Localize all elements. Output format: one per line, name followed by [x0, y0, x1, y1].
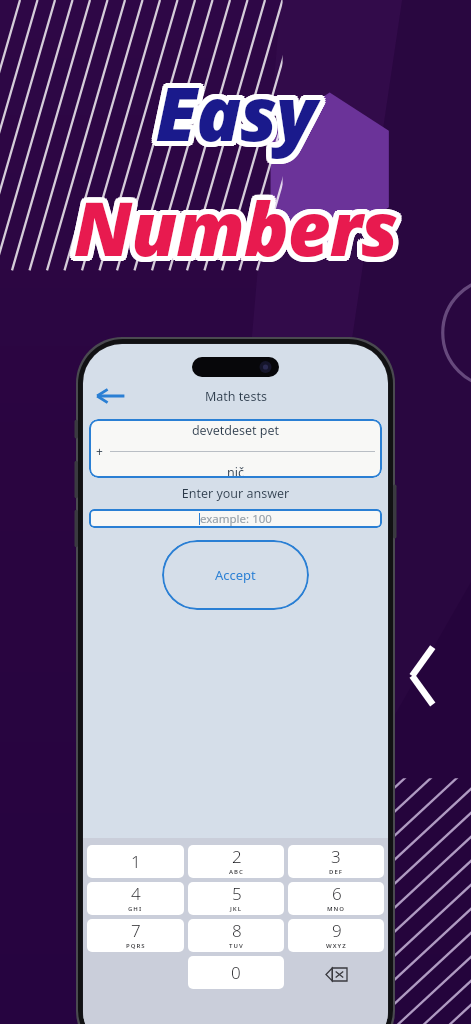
staticText: Numbers — [3, 177, 471, 278]
staticText: 7 — [131, 919, 141, 942]
staticText: Numbers — [0, 177, 468, 278]
staticText: Easy — [5, 60, 471, 161]
button[interactable]: 8 — [188, 919, 284, 952]
staticText: Numbers — [0, 174, 471, 275]
staticText: Numbers — [0, 172, 471, 273]
staticText: Enter your answer — [83, 485, 388, 502]
staticText: Easy — [0, 64, 470, 165]
staticText: Easy — [4, 66, 471, 167]
staticText: Easy — [0, 57, 471, 158]
staticText: Easy — [0, 57, 469, 158]
button[interactable]: 2 — [188, 845, 284, 878]
staticText: Easy — [2, 67, 471, 168]
button[interactable]: 1 — [87, 845, 184, 878]
staticText: Numbers — [0, 177, 466, 278]
staticText: Math tests — [205, 388, 267, 405]
staticText: TUV — [229, 942, 244, 950]
staticText: Easy — [2, 61, 471, 162]
staticText: Numbers — [0, 173, 467, 274]
staticText: 4 — [131, 882, 141, 905]
staticText: Easy — [0, 64, 466, 165]
staticText: Easy — [4, 58, 471, 159]
staticText: 6 — [332, 882, 342, 905]
button[interactable]: 6 — [288, 882, 384, 915]
staticText: Numbers — [0, 179, 466, 280]
button[interactable]: 5 — [188, 882, 284, 915]
staticText: Easy — [0, 65, 471, 166]
staticText: Easy — [0, 58, 467, 159]
staticText: Easy — [1, 60, 471, 161]
button[interactable]: example: 100 — [89, 509, 382, 528]
staticText: Easy — [0, 62, 466, 163]
staticText: Numbers — [1, 175, 471, 276]
staticText: Easy — [0, 59, 471, 160]
button[interactable]: Accept — [162, 540, 309, 610]
staticText: MNO — [327, 905, 346, 913]
staticText: Easy — [3, 62, 471, 163]
staticText: Numbers — [5, 175, 471, 276]
staticText: Numbers — [0, 177, 471, 278]
staticText: Numbers — [0, 182, 469, 283]
staticText: Easy — [0, 61, 469, 162]
staticText: WXYZ — [326, 942, 347, 950]
staticText: Numbers — [5, 179, 471, 280]
staticText: Easy — [1, 64, 471, 165]
staticText: Easy — [0, 67, 471, 168]
button[interactable]: 7 — [87, 919, 184, 952]
staticText: GHI — [128, 905, 143, 913]
staticText: Numbers — [0, 175, 466, 276]
staticText: Numbers — [4, 181, 471, 282]
staticText: Numbers — [0, 176, 469, 277]
staticText: Easy — [0, 63, 469, 164]
button[interactable]: devetdeset pet — [89, 419, 382, 478]
staticText: Numbers — [0, 180, 471, 281]
staticText: Numbers — [2, 182, 471, 283]
staticText: Accept — [215, 566, 256, 584]
button[interactable]: 9 — [288, 919, 384, 952]
staticText: 2 — [232, 845, 242, 868]
staticText: 1 — [131, 850, 141, 873]
staticText: Numbers — [0, 179, 470, 280]
staticText: + — [96, 443, 103, 459]
button[interactable]: 3 — [288, 845, 384, 878]
staticText: example: 100 — [200, 511, 272, 527]
staticText: devetdeset pet — [89, 422, 382, 439]
staticText: Numbers — [2, 176, 471, 277]
staticText: Numbers — [2, 178, 471, 279]
staticText: Numbers — [0, 178, 469, 279]
staticText: Easy — [5, 64, 471, 165]
staticText: DEF — [329, 868, 343, 876]
staticText: JKL — [230, 905, 243, 913]
staticText: 9 — [332, 919, 342, 942]
staticText: Numbers — [0, 182, 471, 283]
staticText: Numbers — [1, 179, 471, 280]
staticText: Easy — [2, 57, 471, 158]
staticText: Easy — [0, 66, 467, 167]
button[interactable]: Backspace — [310, 956, 362, 992]
staticText: PQRS — [126, 942, 146, 950]
staticText: Easy — [0, 67, 469, 168]
button[interactable]: 4 — [87, 882, 184, 915]
button[interactable]: Back — [89, 379, 131, 413]
staticText: 0 — [231, 961, 241, 984]
staticText: ABC — [229, 868, 244, 876]
staticText: Numbers — [0, 181, 467, 282]
staticText: Easy — [2, 63, 471, 164]
staticText: Easy — [5, 62, 471, 163]
staticText: Numbers — [5, 177, 471, 278]
staticText: 8 — [232, 919, 242, 942]
staticText: Numbers — [0, 172, 469, 273]
staticText: Easy — [0, 60, 466, 161]
staticText: Numbers — [4, 173, 471, 274]
staticText: 3 — [331, 845, 341, 868]
staticText: nič — [89, 464, 382, 478]
button[interactable]: 0 — [188, 956, 284, 989]
staticText: 5 — [232, 882, 242, 905]
staticText: Easy — [0, 62, 468, 163]
staticText: Easy — [0, 62, 471, 163]
staticText: Numbers — [2, 172, 471, 273]
staticText: Numbers — [0, 175, 470, 276]
staticText: Easy — [0, 60, 470, 161]
